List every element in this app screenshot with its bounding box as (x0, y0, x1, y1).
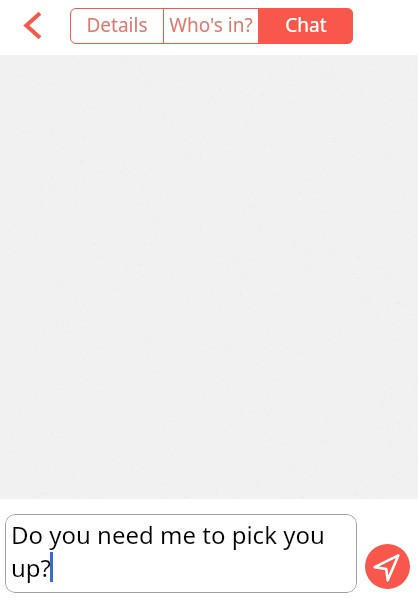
staticText: Chat (285, 12, 327, 38)
button[interactable]: Do you need me to pick you (5, 514, 357, 593)
button[interactable]: Back (8, 4, 54, 50)
staticText: Who's in? (169, 12, 253, 38)
button[interactable]: Chat (259, 8, 353, 44)
staticText: Details (86, 12, 148, 38)
staticText: up? (11, 551, 52, 584)
staticText: Do you need me to pick you (11, 518, 325, 551)
button[interactable]: Who's in? (164, 8, 258, 44)
button[interactable]: Send (365, 544, 410, 589)
button[interactable]: Details (70, 8, 163, 44)
